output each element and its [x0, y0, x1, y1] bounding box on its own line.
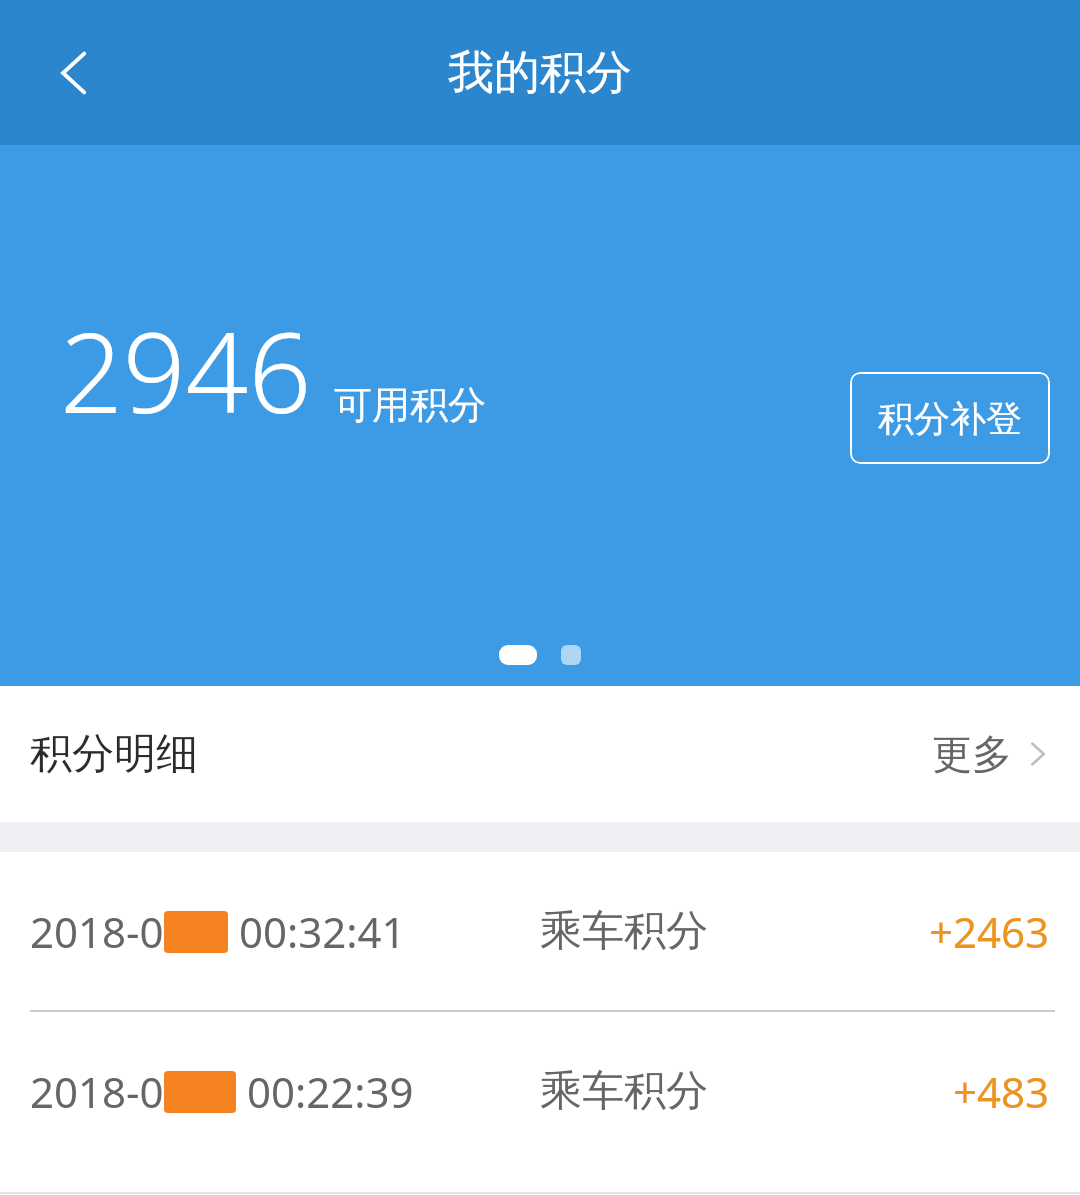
- staticText: 可用积分: [334, 381, 486, 429]
- button[interactable]: 积分补登: [850, 372, 1050, 464]
- staticText: 积分明细: [30, 728, 198, 781]
- staticText: 更多: [932, 729, 1012, 779]
- staticText: +483: [953, 1063, 1050, 1120]
- staticText: 乘车积分: [540, 905, 708, 958]
- staticText: 我的积分: [448, 44, 632, 102]
- staticText: 00:22:39: [236, 1063, 414, 1120]
- button[interactable]: 2018-0: [0, 852, 1080, 1010]
- staticText: 2018-0: [30, 1063, 164, 1120]
- staticText: 2018-0: [30, 903, 164, 960]
- button[interactable]: 积分明细: [0, 686, 1080, 822]
- button[interactable]: 2018-0: [0, 1012, 1080, 1170]
- staticText: 00:32:41: [228, 903, 406, 960]
- staticText: 2946: [60, 295, 312, 445]
- staticText: +2463: [929, 903, 1050, 960]
- staticText: 积分补登: [878, 396, 1022, 441]
- staticText: 乘车积分: [540, 1065, 708, 1118]
- button[interactable]: Back: [28, 26, 122, 120]
